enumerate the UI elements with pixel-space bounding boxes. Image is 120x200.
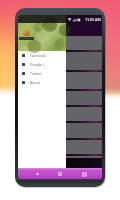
staticText: About (30, 80, 40, 85)
staticText: Twitter (30, 71, 42, 76)
button[interactable]: Home (55, 169, 65, 179)
button[interactable]: Twitter (18, 69, 66, 78)
button[interactable]: Abstract (18, 156, 102, 158)
button[interactable]: Back (32, 169, 42, 179)
button[interactable]: Recent apps (79, 169, 89, 179)
button[interactable]: About (18, 78, 66, 87)
button[interactable]: Google + (18, 60, 66, 69)
button[interactable]: Animals (18, 36, 102, 50)
staticText: Birds (20, 53, 28, 57)
button[interactable]: Art (18, 140, 102, 154)
button[interactable]: Cars (18, 91, 102, 105)
staticText: Wild life (20, 73, 33, 77)
staticText: 11:05 AM (85, 17, 101, 22)
staticText: Facebook (30, 53, 46, 58)
button[interactable]: Birds (18, 52, 102, 70)
button[interactable]: Technology (18, 107, 102, 121)
button[interactable]: Facebook (18, 51, 66, 60)
button[interactable]: Wild life (18, 72, 102, 89)
button[interactable]: Gaming (18, 123, 102, 138)
staticText: Google + (30, 62, 45, 67)
staticText: Animals (20, 37, 33, 41)
